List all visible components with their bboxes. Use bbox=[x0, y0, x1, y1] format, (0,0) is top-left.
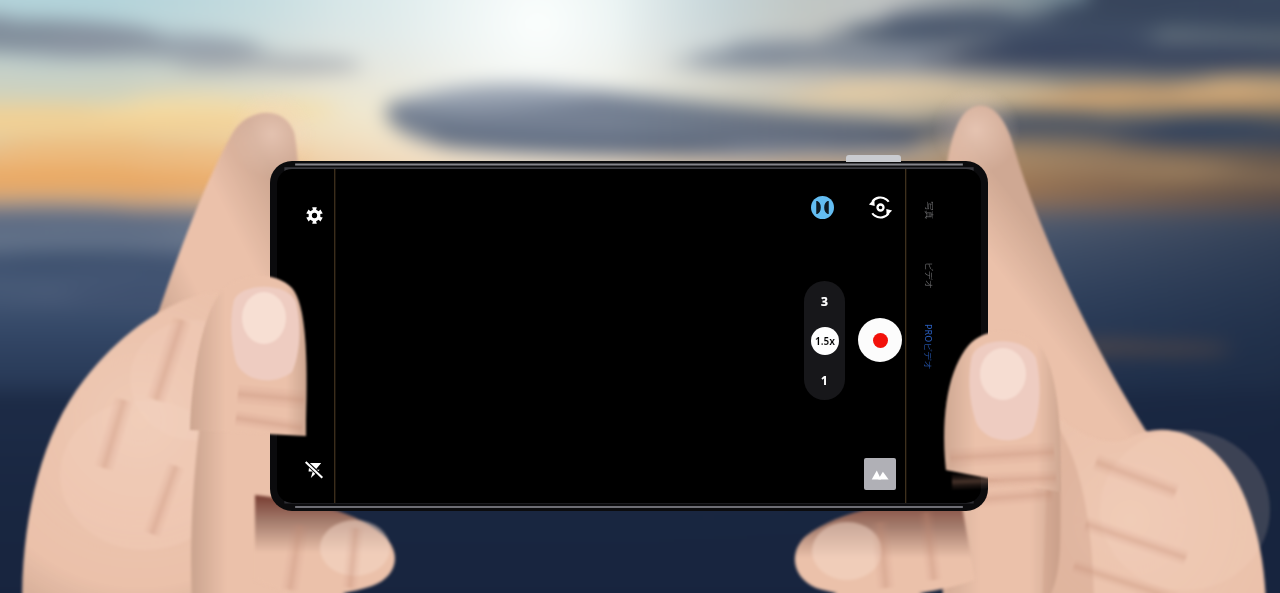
button[interactable]: Gallery bbox=[864, 458, 896, 490]
button[interactable]: Settings bbox=[300, 201, 328, 229]
button[interactable]: 写真 bbox=[881, 169, 977, 258]
button[interactable]: 1 bbox=[804, 367, 845, 393]
button[interactable]: 3 bbox=[804, 288, 845, 314]
staticText: 1 bbox=[821, 372, 828, 388]
button[interactable]: Dolby Vision bbox=[811, 196, 834, 219]
staticText: PROビデオ bbox=[923, 324, 935, 370]
button[interactable]: 1.5x bbox=[811, 327, 839, 355]
staticText: 写真 bbox=[923, 201, 934, 219]
button[interactable]: PROビデオ bbox=[881, 299, 977, 395]
staticText: 3 bbox=[821, 293, 828, 309]
staticText: 1.5x bbox=[815, 334, 836, 348]
button[interactable]: Switch camera bbox=[866, 193, 894, 221]
button[interactable]: Record bbox=[858, 318, 902, 362]
staticText: ビデオ bbox=[923, 261, 934, 289]
button[interactable]: ビデオ bbox=[881, 227, 977, 323]
button[interactable]: Flash off bbox=[300, 456, 328, 484]
